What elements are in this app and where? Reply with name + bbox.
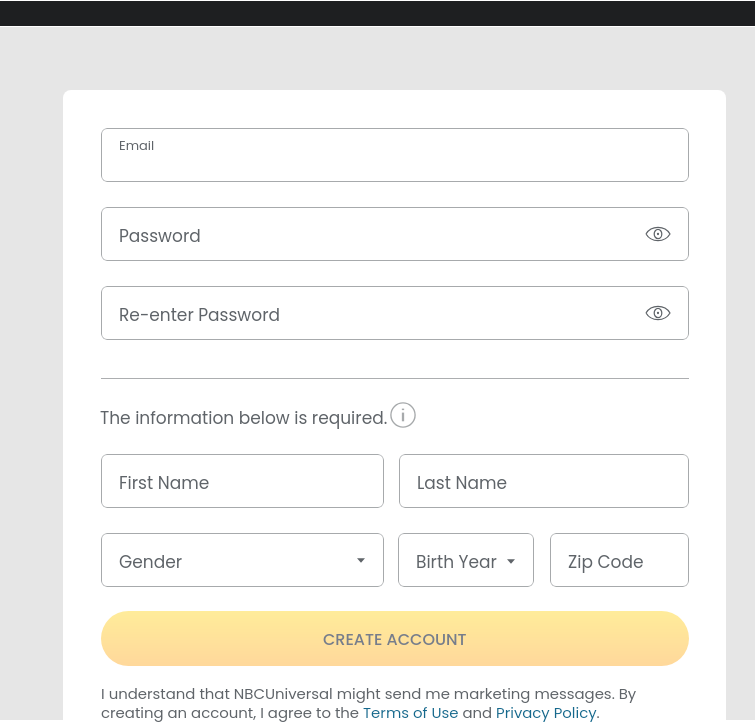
button[interactable]: More information — [389, 401, 417, 429]
staticText: Gender — [119, 550, 183, 574]
button[interactable]: Email — [101, 128, 689, 182]
button[interactable]: Show password — [646, 226, 670, 242]
button[interactable]: Privacy Policy — [496, 704, 597, 723]
button[interactable]: Birth Year — [398, 533, 534, 587]
staticText: Email — [119, 136, 155, 154]
button[interactable]: Password — [101, 207, 689, 261]
staticText: Birth Year — [416, 550, 497, 574]
button[interactable]: Last Name — [399, 454, 689, 508]
staticText: Zip Code — [568, 550, 644, 574]
staticText: Last Name — [417, 471, 507, 495]
button[interactable]: Gender — [101, 533, 384, 587]
staticText: I understand that NBCUniversal might sen… — [101, 683, 701, 723]
button[interactable]: Show password — [646, 305, 670, 321]
button[interactable]: Terms of Use — [362, 704, 459, 723]
button[interactable]: CREATE ACCOUNT — [101, 611, 689, 666]
staticText: Password — [119, 224, 201, 248]
staticText: Re-enter Password — [119, 303, 281, 327]
staticText: The information below is required. — [100, 406, 388, 430]
button[interactable]: Zip Code — [550, 533, 689, 587]
staticText: First Name — [119, 471, 210, 495]
staticText: CREATE ACCOUNT — [323, 628, 467, 650]
button[interactable]: First Name — [101, 454, 384, 508]
button[interactable]: Re-enter Password — [101, 286, 689, 340]
